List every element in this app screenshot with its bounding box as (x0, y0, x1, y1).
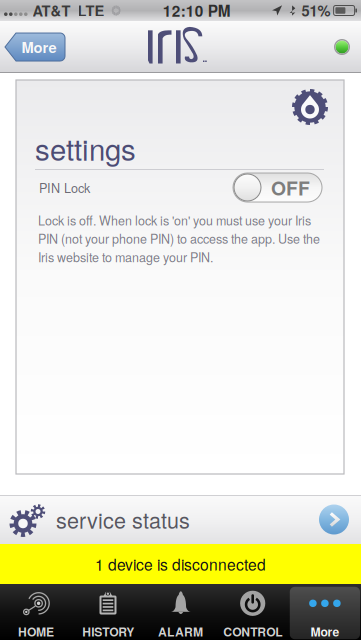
staticText: CONTROL (223, 623, 282, 640)
staticText: 51% (302, 0, 331, 21)
staticText: More (21, 36, 56, 57)
button[interactable]: HISTORY (72, 584, 144, 640)
staticText: Lock is off. When lock is 'on' you must … (38, 211, 320, 266)
button[interactable]: ALARM (144, 584, 217, 640)
staticText: service status (56, 504, 190, 535)
button[interactable]: More (289, 584, 361, 640)
button[interactable]: More (5, 33, 65, 61)
staticText: PIN Lock (39, 178, 90, 196)
staticText: OFF (271, 174, 310, 201)
staticText: LTE (78, 0, 105, 21)
staticText: 12:10 PM (163, 0, 231, 21)
staticText: HOME (18, 623, 54, 640)
button[interactable]: OFF (233, 173, 322, 202)
staticText: ALARM (158, 623, 203, 640)
button[interactable]: HOME (0, 584, 72, 640)
button[interactable]: service status (0, 495, 361, 544)
staticText: settings (35, 127, 136, 169)
staticText: 1 device is disconnected (95, 553, 266, 575)
staticText: More (310, 623, 339, 640)
staticText: AT&T (33, 0, 71, 21)
staticText: HISTORY (82, 623, 134, 640)
button[interactable]: CONTROL (217, 584, 289, 640)
